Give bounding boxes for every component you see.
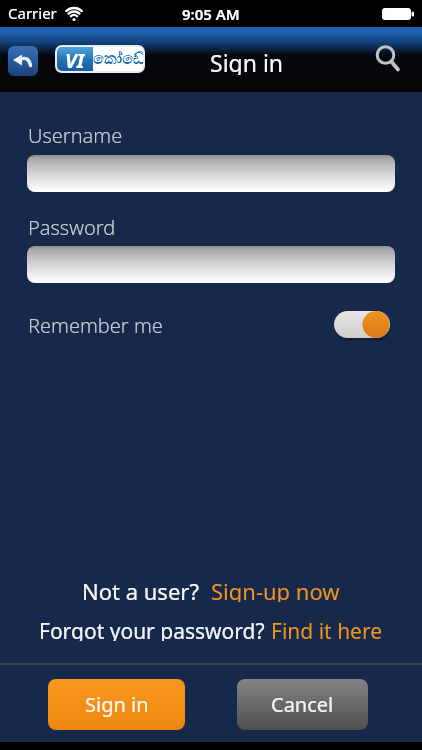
staticText: VI <box>65 47 85 71</box>
button[interactable] <box>8 46 38 76</box>
button[interactable]: Sign in <box>48 679 185 730</box>
staticText: Forgot your password? <box>39 617 271 641</box>
staticText: Sign-up now <box>211 576 340 602</box>
staticText: කෝඩේ <box>93 51 143 67</box>
button[interactable] <box>27 155 395 192</box>
button[interactable] <box>27 246 395 283</box>
staticText: Cancel <box>271 691 334 718</box>
button[interactable]: Find it here <box>271 617 383 641</box>
staticText: Sign in <box>85 691 149 718</box>
staticText: Not a user? <box>82 576 211 602</box>
staticText: 9:05 AM <box>182 4 240 24</box>
button[interactable]: Sign-up now <box>211 576 340 602</box>
button[interactable]: VI <box>55 45 145 73</box>
button[interactable]: Cancel <box>237 679 368 730</box>
button[interactable] <box>334 311 390 339</box>
staticText: Sign in <box>210 47 284 75</box>
staticText: Username <box>28 122 123 149</box>
button[interactable] <box>372 43 406 77</box>
staticText: Find it here <box>271 617 383 641</box>
staticText: Remember me <box>28 312 163 339</box>
staticText: Password <box>28 214 116 241</box>
staticText: Carrier <box>8 3 57 23</box>
